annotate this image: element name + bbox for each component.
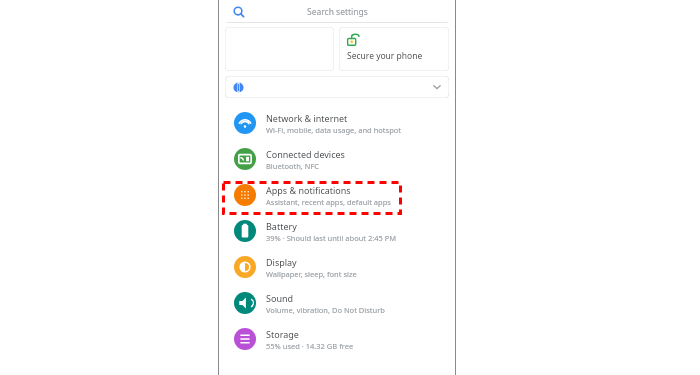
button[interactable]: Display bbox=[218, 249, 456, 285]
staticText: Volume, vibration, Do Not Disturb bbox=[266, 305, 385, 315]
staticText: Display bbox=[266, 256, 297, 268]
staticText: Search settings bbox=[307, 6, 368, 18]
staticText: 55% used · 14.32 GB free bbox=[266, 341, 354, 351]
staticText: Secure your phone bbox=[347, 50, 423, 62]
button[interactable]: Sound bbox=[218, 285, 456, 321]
staticText: 39% · Should last until about 2:45 PM bbox=[266, 233, 397, 243]
staticText: Storage bbox=[266, 328, 299, 340]
button[interactable]: Battery bbox=[218, 213, 456, 249]
button[interactable]: Apps & notifications bbox=[218, 177, 456, 213]
staticText: Wi-Fi, mobile, data usage, and hotspot bbox=[266, 125, 401, 135]
staticText: Assistant, recent apps, default apps bbox=[266, 197, 391, 207]
staticText: Wallpaper, sleep, font size bbox=[266, 269, 357, 279]
button[interactable]: Storage bbox=[218, 321, 456, 357]
staticText: Connected devices bbox=[266, 148, 345, 160]
other: Search bbox=[233, 6, 245, 18]
button[interactable]: Expand suggestions bbox=[225, 76, 449, 98]
button[interactable]: Secure your phone bbox=[339, 27, 449, 71]
staticText: Network & internet bbox=[266, 112, 348, 124]
button[interactable]: Search bbox=[225, 0, 449, 23]
staticText: Sound bbox=[266, 292, 294, 304]
staticText: Battery bbox=[266, 220, 297, 232]
button[interactable]: Suggestion bbox=[225, 27, 334, 71]
staticText: Apps & notifications bbox=[266, 184, 351, 196]
staticText: Bluetooth, NFC bbox=[266, 161, 320, 171]
button[interactable]: Connected devices bbox=[218, 141, 456, 177]
button[interactable]: Network & internet bbox=[218, 105, 456, 141]
